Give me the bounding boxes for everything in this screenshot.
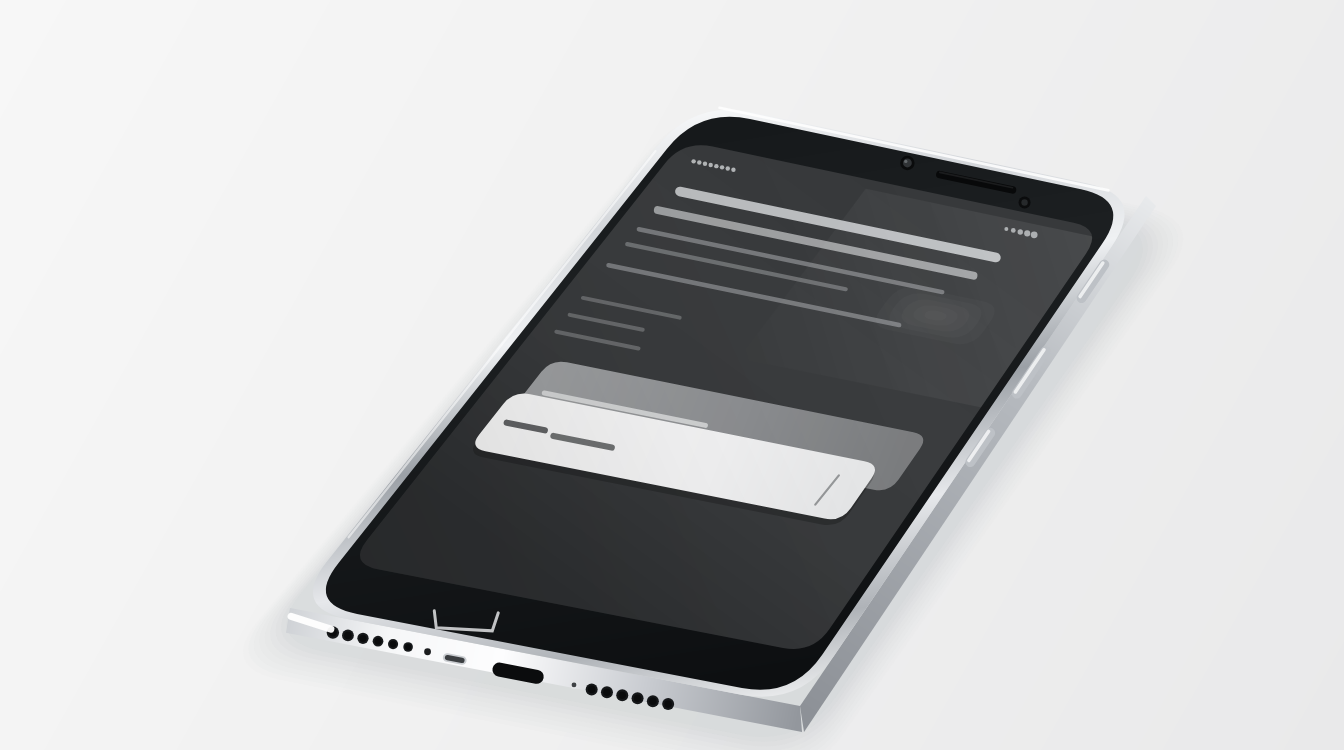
button[interactable]: Smartphone product render (0, 0, 1344, 750)
